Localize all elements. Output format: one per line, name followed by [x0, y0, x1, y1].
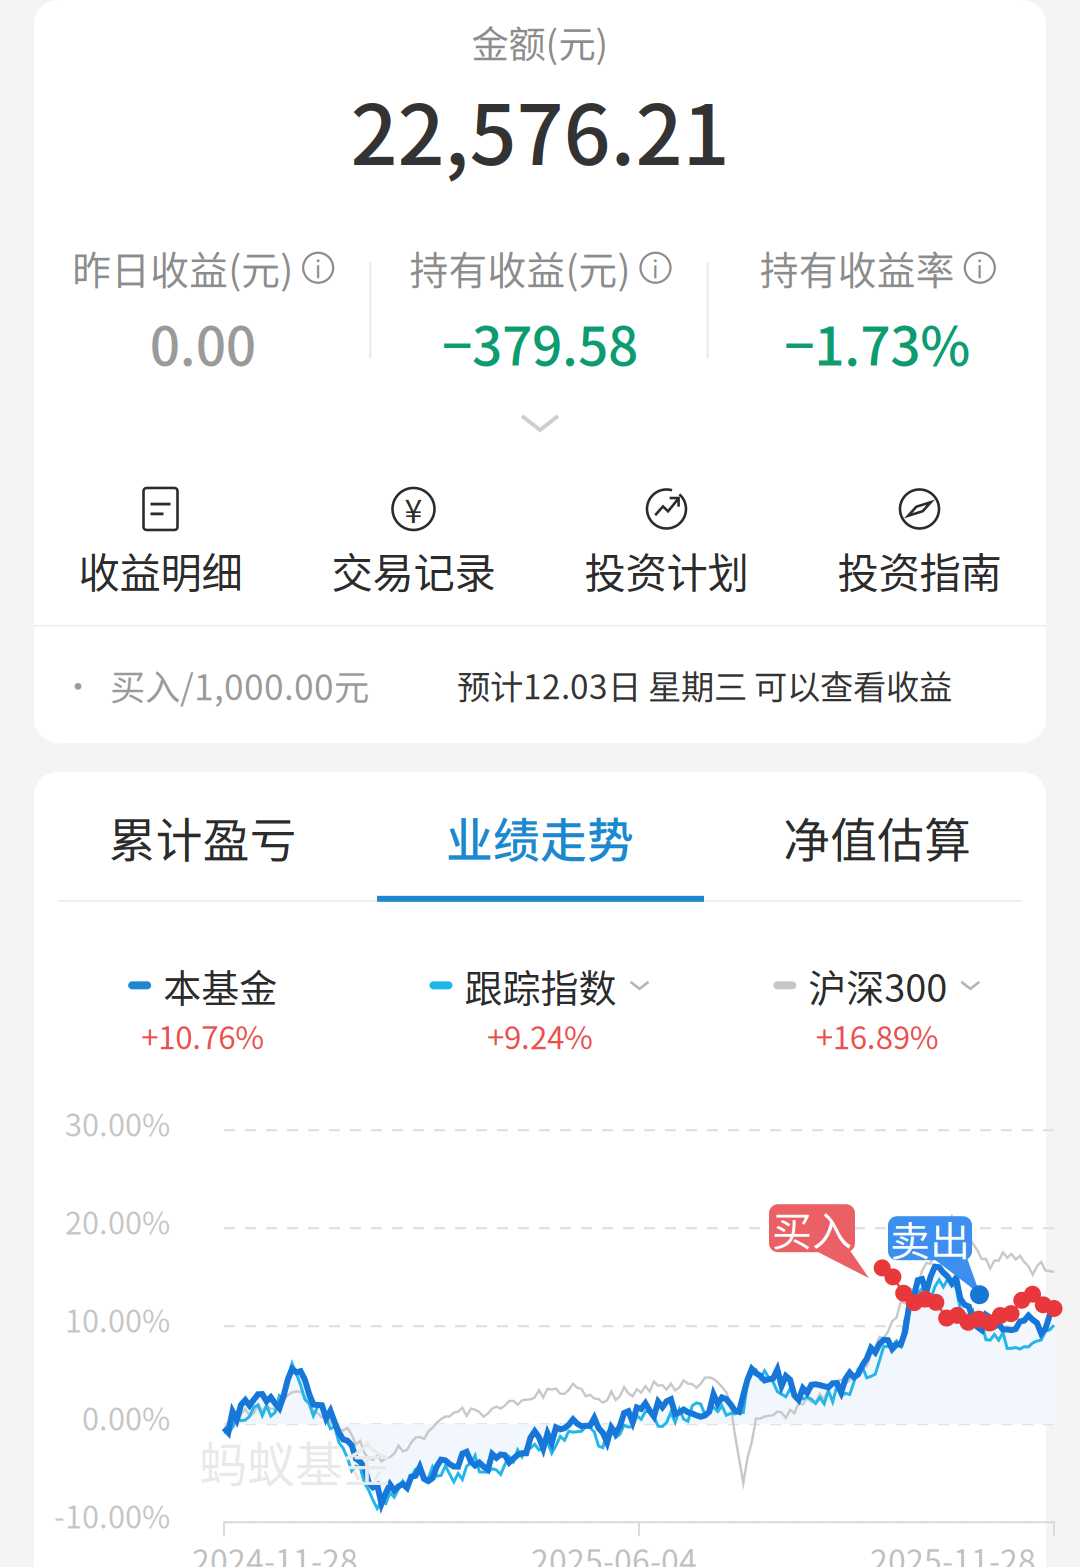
button[interactable]: •: [34, 627, 1046, 743]
staticText: 2025-06-04: [531, 1536, 697, 1567]
button[interactable]: 跟踪指数: [371, 958, 709, 1058]
staticText: 投资指南: [837, 540, 1001, 600]
staticText: 持有收益率: [760, 240, 955, 296]
staticText: i: [315, 250, 322, 285]
staticText: 沪深300: [808, 958, 947, 1013]
staticText: −379.58: [442, 304, 638, 381]
button[interactable]: 累计盈亏: [34, 772, 371, 902]
staticText: 本基金: [163, 958, 277, 1013]
staticText: 买入/1,000.00元: [110, 659, 369, 710]
button[interactable]: Expand: [440, 406, 640, 440]
button[interactable]: 昨日收益(元): [34, 240, 371, 381]
staticText: 持有收益(元): [409, 240, 630, 296]
button[interactable]: 收益明细: [34, 488, 287, 600]
staticText: +10.76%: [141, 1013, 264, 1058]
staticText: 30.00%: [65, 1101, 170, 1145]
staticText: 净值估算: [783, 803, 971, 871]
staticText: 投资计划: [584, 540, 748, 600]
staticText: 业绩走势: [446, 803, 634, 871]
staticText: 累计盈亏: [109, 803, 297, 871]
staticText: •: [62, 662, 94, 708]
staticText: 卖出: [890, 1209, 970, 1267]
staticText: 昨日收益(元): [72, 240, 293, 296]
staticText: i: [976, 250, 983, 285]
button[interactable]: 沪深300: [709, 958, 1046, 1058]
button[interactable]: 本基金: [34, 958, 371, 1058]
staticText: 22,576.21: [350, 69, 729, 189]
staticText: 交易记录: [331, 540, 495, 600]
staticText: i: [652, 250, 659, 285]
button[interactable]: 净值估算: [709, 772, 1046, 902]
staticText: 2025-11-28: [870, 1536, 1036, 1567]
staticText: 买入: [772, 1199, 852, 1257]
staticText: 0.00: [150, 304, 256, 381]
staticText: 20.00%: [65, 1199, 170, 1243]
button[interactable]: 投资指南: [793, 488, 1046, 600]
staticText: 金额(元): [471, 15, 608, 69]
staticText: 2024-11-28: [192, 1536, 358, 1567]
button[interactable]: 持有收益率: [709, 240, 1046, 381]
staticText: ¥: [404, 486, 422, 532]
button[interactable]: 业绩走势: [371, 772, 709, 902]
staticText: 跟踪指数: [464, 958, 616, 1013]
button[interactable]: ¥: [287, 488, 540, 600]
button[interactable]: 持有收益(元): [371, 240, 709, 381]
staticText: +9.24%: [487, 1013, 593, 1058]
staticText: 0.00%: [82, 1395, 170, 1439]
staticText: −1.73%: [784, 304, 970, 381]
staticText: 预计12.03日 星期三 可以查看收益: [457, 661, 952, 709]
staticText: -10.00%: [54, 1493, 170, 1537]
staticText: 10.00%: [65, 1297, 170, 1341]
staticText: +16.89%: [816, 1013, 939, 1058]
button[interactable]: 投资计划: [540, 488, 793, 600]
staticText: 蚂蚁基金: [199, 1426, 391, 1496]
staticText: 收益明细: [78, 540, 242, 600]
